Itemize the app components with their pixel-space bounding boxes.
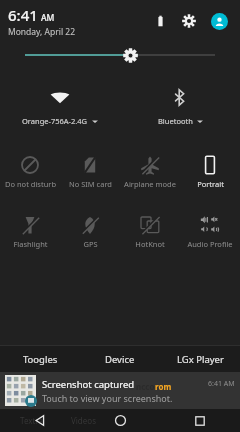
button[interactable]: Audio Profile <box>180 211 240 253</box>
staticText: Toogles <box>23 353 58 366</box>
staticText: No SIM card <box>69 179 112 189</box>
button[interactable]: Toogles <box>0 346 80 372</box>
staticText: 6:41 AM <box>208 379 235 389</box>
button[interactable]: Wi-Fi Orange-756A-2.4G <box>0 80 120 135</box>
button[interactable]: Device <box>80 346 160 372</box>
button[interactable]: Do not disturb <box>0 151 60 193</box>
button[interactable]: HotKnot <box>120 211 180 253</box>
button[interactable]: Portrait <box>180 151 240 193</box>
staticText: rom <box>155 381 172 392</box>
staticText: LGx Player <box>177 353 224 366</box>
staticText: Portrait <box>197 179 224 189</box>
staticText: HotKnot <box>135 239 165 249</box>
staticText: AM <box>41 12 55 24</box>
button[interactable]: Home <box>80 409 160 432</box>
button[interactable]: Settings <box>178 10 200 32</box>
staticText: Touch to view your screenshot. <box>42 392 173 404</box>
button[interactable]: Screenshot captured <box>0 372 240 409</box>
button[interactable]: Brightness <box>0 42 240 68</box>
staticText: 6:41 <box>8 5 38 25</box>
button[interactable]: Airplane mode <box>120 151 180 193</box>
staticText: Orange-756A-2.4G <box>22 116 88 126</box>
staticText: Textra <box>20 415 43 426</box>
button[interactable]: GPS <box>60 211 120 253</box>
button[interactable]: No SIM card <box>60 151 120 193</box>
staticText: Monday, April 22 <box>8 26 76 38</box>
button[interactable]: User profile <box>208 10 230 32</box>
staticText: Flashlight <box>13 239 48 249</box>
button[interactable]: Recent apps <box>160 409 240 432</box>
staticText: Videos <box>71 415 96 426</box>
button[interactable]: LGx Player <box>160 346 240 372</box>
staticText: Screenshot captured <box>42 378 135 391</box>
button[interactable]: Bluetooth <box>120 80 240 135</box>
staticText: Audio Profile <box>187 239 233 249</box>
staticText: Device <box>105 353 135 366</box>
staticText: Do not disturb <box>5 179 56 189</box>
staticText: GPS <box>83 239 98 249</box>
button[interactable]: Flashlight <box>0 211 60 253</box>
staticText: Airplane mode <box>124 179 176 189</box>
staticText: Bluetooth <box>158 116 193 126</box>
button[interactable]: Battery <box>150 11 170 31</box>
button[interactable]: Back <box>0 409 80 432</box>
